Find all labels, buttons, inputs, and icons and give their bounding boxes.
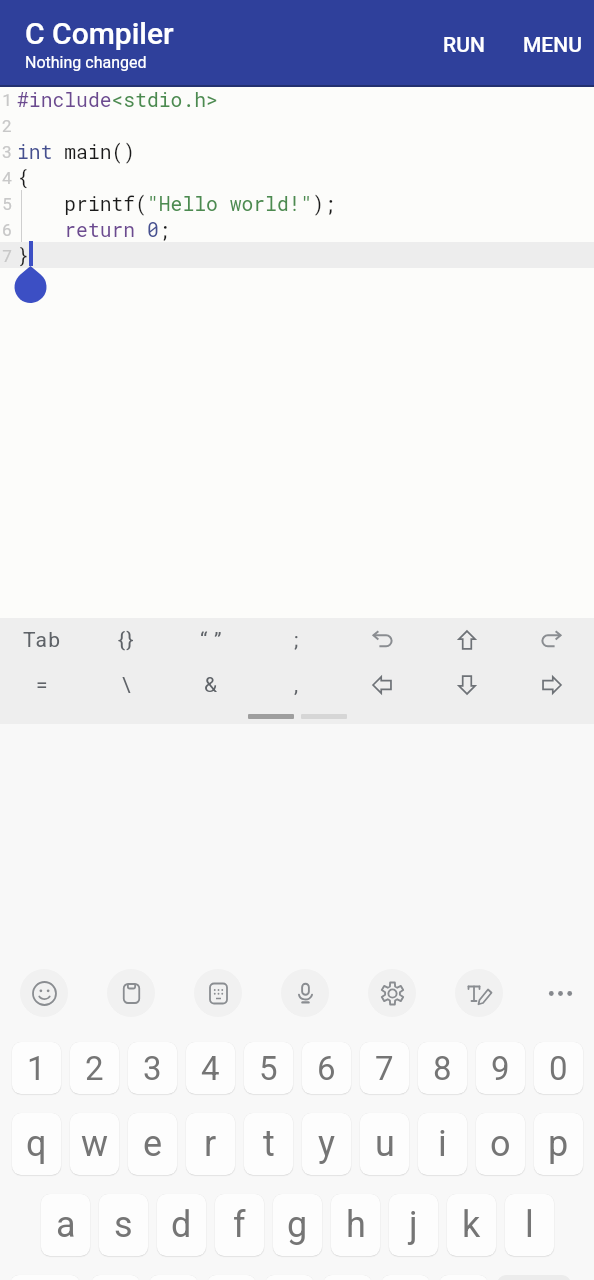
button[interactable]: a — [41, 1194, 90, 1256]
button[interactable]: d — [157, 1194, 206, 1256]
staticText: \ — [122, 673, 132, 698]
button[interactable]: Redo — [509, 618, 594, 662]
button[interactable]: \ — [84, 662, 169, 708]
staticText: } — [17, 242, 29, 268]
button[interactable]: j — [389, 1194, 438, 1256]
button[interactable]: 8 — [418, 1042, 467, 1094]
staticText: e — [143, 1123, 163, 1165]
staticText: 8 — [433, 1049, 452, 1088]
button[interactable]: g — [273, 1194, 322, 1256]
button[interactable]: Backspace — [497, 1275, 571, 1280]
button[interactable]: Emoji — [20, 969, 68, 1017]
button[interactable]: , — [254, 662, 339, 708]
button[interactable]: Handwriting — [455, 969, 503, 1017]
button[interactable]: Tab — [0, 618, 84, 662]
button[interactable]: “ ” — [169, 618, 254, 662]
staticText: 4 — [201, 1049, 220, 1088]
staticText: int main() — [17, 138, 136, 164]
button[interactable]: Move right — [509, 662, 594, 708]
staticText: 4 — [2, 166, 13, 188]
button[interactable]: & — [169, 662, 254, 708]
button[interactable]: s — [99, 1194, 148, 1256]
button[interactable]: 6 — [302, 1042, 351, 1094]
staticText: s — [114, 1204, 133, 1246]
button[interactable]: Shift — [424, 618, 509, 662]
staticText: Nothing changed — [25, 53, 147, 72]
staticText: , — [294, 673, 300, 698]
button[interactable]: 9 — [476, 1042, 525, 1094]
button[interactable]: t — [244, 1113, 293, 1175]
button[interactable]: f — [215, 1194, 264, 1256]
button[interactable]: h — [331, 1194, 380, 1256]
button[interactable]: l — [505, 1194, 554, 1256]
staticText: 6 — [2, 218, 13, 240]
button[interactable]: MENU — [504, 23, 594, 68]
staticText: { — [17, 164, 29, 190]
button[interactable]: u — [360, 1113, 409, 1175]
button[interactable]: Move left — [339, 662, 424, 708]
button[interactable]: RUN — [424, 23, 504, 68]
staticText: 3 — [143, 1049, 162, 1088]
button[interactable]: Move down — [424, 662, 509, 708]
staticText: ; — [294, 628, 300, 653]
staticText: = — [36, 673, 49, 698]
button[interactable]: 1 — [12, 1042, 61, 1094]
button[interactable]: e — [128, 1113, 177, 1175]
staticText: “ ” — [200, 628, 223, 653]
staticText: 6 — [317, 1049, 336, 1088]
button[interactable]: 0 — [534, 1042, 583, 1094]
staticText: return 0; — [17, 216, 171, 242]
button[interactable]: 3 — [128, 1042, 177, 1094]
button[interactable]: q — [12, 1113, 61, 1175]
staticText: 2 — [2, 114, 13, 136]
button[interactable]: Stickers — [194, 969, 242, 1017]
button[interactable]: 7 — [360, 1042, 409, 1094]
button[interactable]: 5 — [244, 1042, 293, 1094]
staticText: 1 — [2, 88, 13, 110]
button[interactable]: Clipboard — [107, 969, 155, 1017]
staticText: a — [56, 1204, 76, 1246]
staticText: h — [346, 1204, 366, 1246]
staticText: 0 — [549, 1049, 568, 1088]
button[interactable]: p — [534, 1113, 583, 1175]
button[interactable]: = — [0, 662, 84, 708]
staticText: j — [409, 1204, 418, 1246]
button[interactable]: y — [302, 1113, 351, 1175]
staticText: 9 — [491, 1049, 510, 1088]
staticText: y — [318, 1123, 336, 1165]
button[interactable]: 2 — [70, 1042, 119, 1094]
staticText: 7 — [375, 1049, 394, 1088]
button[interactable]: Undo — [339, 618, 424, 662]
staticText: d — [171, 1204, 192, 1246]
staticText: Tab — [23, 628, 62, 653]
button[interactable]: More options — [536, 969, 584, 1017]
staticText: {} — [118, 628, 135, 653]
staticText: k — [462, 1204, 481, 1246]
staticText: i — [438, 1123, 447, 1165]
button[interactable]: 4 — [186, 1042, 235, 1094]
staticText: 7 — [2, 244, 13, 266]
button[interactable]: {} — [84, 618, 169, 662]
staticText: printf("Hello world!"); — [17, 190, 336, 216]
button[interactable]: ; — [254, 618, 339, 662]
staticText: MENU — [523, 33, 582, 58]
button[interactable]: i — [418, 1113, 467, 1175]
button[interactable]: Voice input — [281, 969, 329, 1017]
staticText: RUN — [443, 33, 485, 58]
button[interactable]: r — [186, 1113, 235, 1175]
button[interactable]: Settings — [368, 969, 416, 1017]
staticText: 5 — [2, 192, 13, 214]
button[interactable]: k — [447, 1194, 496, 1256]
staticText: 5 — [259, 1049, 278, 1088]
staticText: 2 — [85, 1049, 104, 1088]
button[interactable]: o — [476, 1113, 525, 1175]
button[interactable]: w — [70, 1113, 119, 1175]
